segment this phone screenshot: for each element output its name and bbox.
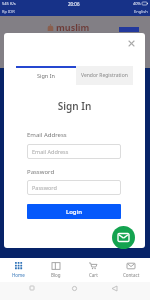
button[interactable]: Password: [27, 180, 121, 195]
staticText: Cart: [89, 272, 98, 278]
button[interactable]: Vendor Registration: [76, 66, 133, 85]
staticText: Sign In: [4, 99, 145, 113]
staticText: English: [134, 9, 148, 14]
staticText: 20:06: [68, 1, 80, 7]
button[interactable]: Sign In: [16, 66, 76, 85]
staticText: Blog: [51, 272, 61, 278]
staticText: 545 K/s: [2, 1, 16, 6]
staticText: Password: [32, 184, 57, 191]
staticText: Home: [12, 272, 25, 278]
button[interactable]: Back: [108, 282, 120, 294]
button[interactable]: Close: [126, 38, 137, 49]
staticText: Login: [66, 208, 82, 216]
button[interactable]: Recents: [26, 282, 38, 294]
button[interactable]: Email Address: [27, 144, 121, 159]
button[interactable]: Home: [0, 258, 37, 282]
staticText: Rp IDR: [2, 9, 15, 14]
button[interactable]: Home: [68, 282, 80, 294]
button[interactable]: Message: [112, 226, 135, 249]
button[interactable]: Cart: [74, 258, 112, 282]
button[interactable]: Blog: [37, 258, 74, 282]
staticText: Password: [27, 168, 55, 176]
staticText: Sign In: [37, 72, 55, 79]
staticText: muslim: [56, 21, 90, 33]
staticText: Email Address: [27, 131, 67, 139]
button[interactable]: Login: [27, 204, 121, 219]
staticText: Contact: [123, 272, 140, 278]
staticText: Vendor Registration: [81, 72, 128, 79]
staticText: 40%: [133, 1, 141, 6]
button[interactable]: Contact: [112, 258, 150, 282]
staticText: Email Address: [32, 148, 69, 155]
